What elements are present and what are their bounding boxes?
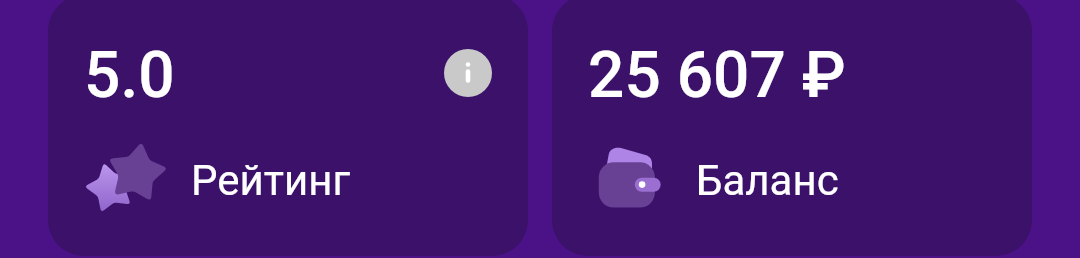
staticText: Рейтинг: [191, 156, 351, 205]
staticText: 5.0: [84, 38, 175, 113]
button[interactable]: Информация о рейтинге: [444, 49, 492, 97]
button[interactable]: [48, 0, 528, 256]
staticText: Баланс: [696, 156, 839, 205]
staticText: 25 607 ₽: [588, 38, 846, 113]
button[interactable]: [552, 0, 1032, 256]
